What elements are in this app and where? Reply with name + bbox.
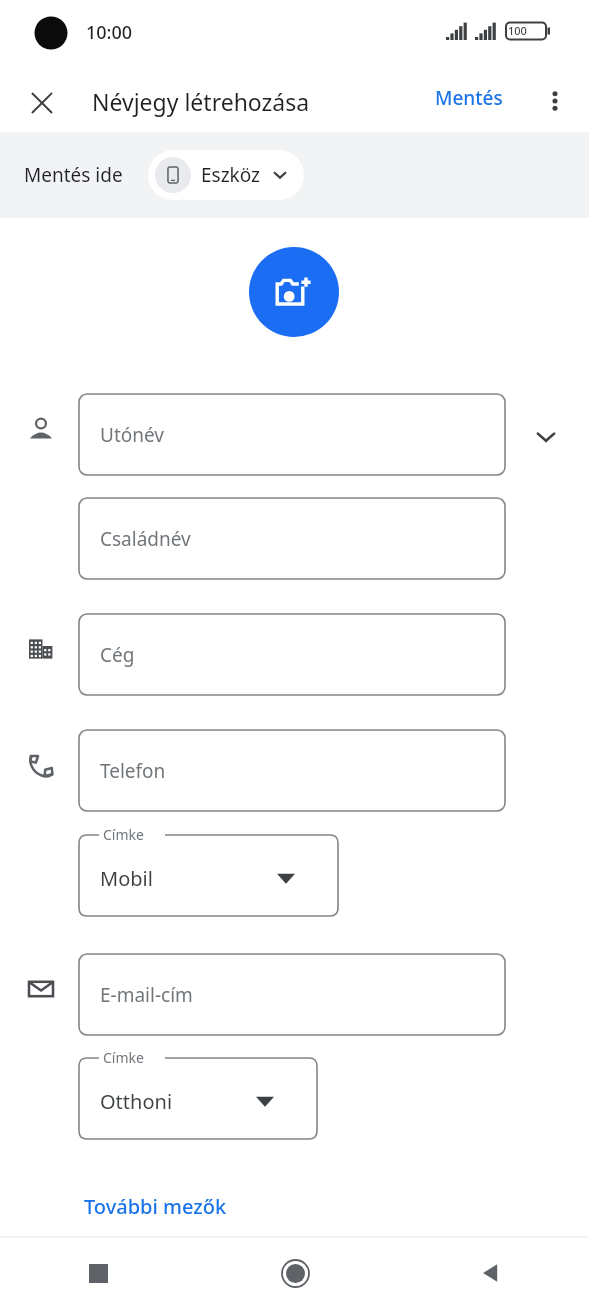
button[interactable]: Címke <box>79 1058 317 1139</box>
button[interactable]: Cég <box>79 614 505 695</box>
button[interactable]: Eszköz <box>148 150 304 200</box>
button[interactable]: More options <box>532 78 578 124</box>
button[interactable]: További mezők <box>70 1183 241 1229</box>
button[interactable]: Családnév <box>79 498 505 579</box>
staticText: További mezők <box>84 1193 227 1220</box>
staticText: Mobil <box>100 865 153 892</box>
button[interactable]: E-mail-cím <box>79 954 505 1035</box>
button[interactable]: Mentés <box>427 78 511 118</box>
staticText: Névjegy létrehozása <box>92 86 310 117</box>
button[interactable]: Címke <box>79 835 338 916</box>
staticText: 10:00 <box>86 20 133 45</box>
staticText: Mentés <box>435 85 503 111</box>
button[interactable]: Back <box>393 1237 589 1309</box>
button[interactable]: Home <box>197 1237 393 1309</box>
staticText: Címke <box>103 825 144 844</box>
staticText: Eszköz <box>201 162 260 188</box>
button[interactable]: Utónév <box>79 394 505 475</box>
button[interactable]: Recents <box>0 1237 197 1309</box>
staticText: Mentés ide <box>24 162 123 188</box>
button[interactable]: Add photo <box>249 247 339 337</box>
staticText: 100 <box>508 23 527 38</box>
staticText: Cég <box>100 642 135 668</box>
staticText: Utónév <box>100 422 164 448</box>
button[interactable]: Expand name fields <box>523 414 569 460</box>
staticText: Otthoni <box>100 1088 173 1115</box>
staticText: Címke <box>103 1048 144 1067</box>
staticText: Családnév <box>100 526 191 552</box>
button[interactable]: Close <box>18 79 66 127</box>
button[interactable]: Telefon <box>79 730 505 811</box>
staticText: Telefon <box>100 758 166 784</box>
staticText: E-mail-cím <box>100 982 193 1008</box>
